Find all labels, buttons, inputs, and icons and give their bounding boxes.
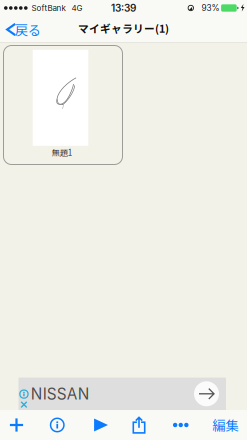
button[interactable]: 戻る — [0, 16, 47, 43]
button[interactable]: その他 — [157, 410, 204, 440]
button[interactable]: 再生 — [81, 410, 120, 440]
staticText: NISSAN — [31, 384, 90, 403]
button[interactable]: NISSAN — [18, 378, 226, 410]
staticText: SoftBank — [32, 3, 66, 13]
staticText: 4G — [72, 3, 83, 13]
button[interactable]: 新規 — [0, 410, 33, 440]
button[interactable]: 共有 — [120, 410, 157, 440]
staticText: 編集 — [212, 415, 238, 435]
staticText: マイギャラリー(1) — [78, 20, 169, 36]
button[interactable]: 情報 — [33, 410, 81, 440]
staticText: 戻る — [15, 20, 41, 39]
staticText: 13:39 — [111, 2, 136, 14]
button[interactable]: 無題1 — [3, 45, 122, 164]
staticText: 無題1 — [52, 146, 72, 158]
staticText: 93% — [202, 3, 220, 13]
button[interactable]: 編集 — [204, 410, 247, 440]
